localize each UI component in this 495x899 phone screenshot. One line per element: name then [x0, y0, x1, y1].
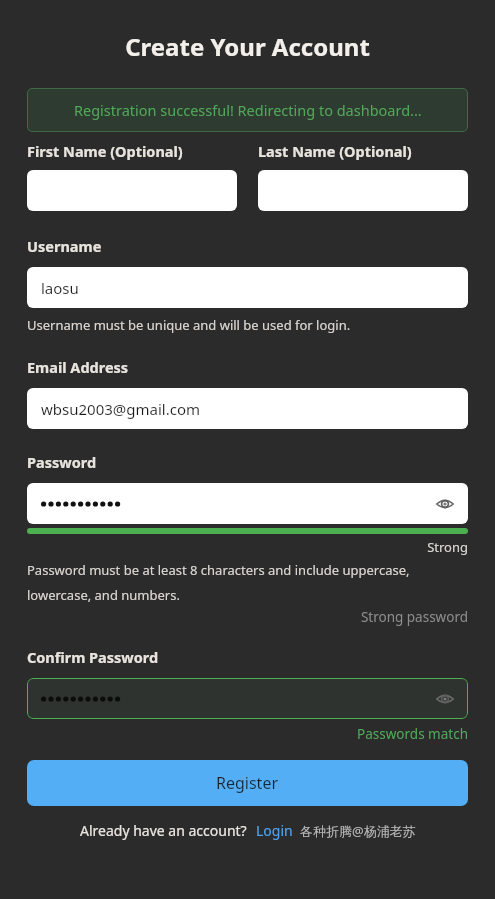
button[interactable]: Register	[27, 760, 468, 806]
button[interactable]: Toggle password visibility	[27, 678, 468, 719]
button[interactable]: laosu	[27, 267, 468, 308]
staticText: Password must be at least 8 characters a…	[27, 561, 468, 603]
staticText: Register	[216, 772, 279, 794]
button[interactable]	[258, 170, 468, 211]
staticText: Strong	[27, 538, 468, 556]
staticText: Password	[27, 452, 97, 472]
staticText: Login	[256, 821, 293, 840]
staticText: Username	[27, 236, 102, 256]
staticText: Passwords match	[27, 725, 468, 743]
button[interactable]: Toggle password visibility	[432, 686, 458, 712]
staticText: laosu	[41, 278, 79, 298]
staticText: Already have an account?	[80, 821, 247, 840]
staticText: Strong password	[27, 608, 468, 626]
staticText: First Name (Optional)	[27, 141, 183, 161]
staticText: Last Name (Optional)	[258, 141, 412, 161]
button[interactable]: wbsu2003@gmail.com	[27, 388, 468, 429]
staticText: Registration successful! Redirecting to …	[74, 100, 422, 120]
staticText: Confirm Password	[27, 647, 159, 667]
button[interactable]: Login	[256, 821, 293, 840]
staticText: Create Your Account	[125, 30, 370, 63]
staticText: wbsu2003@gmail.com	[41, 399, 201, 419]
button[interactable]	[27, 170, 237, 211]
staticText: 各种折腾@杨浦老苏	[300, 822, 416, 840]
button[interactable]: Toggle password visibility	[27, 483, 468, 524]
button[interactable]: Toggle password visibility	[432, 491, 458, 517]
staticText: Username must be unique and will be used…	[27, 316, 351, 334]
staticText: Email Address	[27, 357, 129, 377]
